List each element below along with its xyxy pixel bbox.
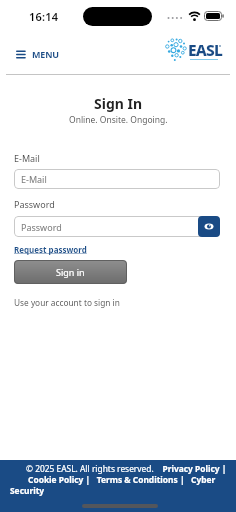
button[interactable]: Sign in	[14, 260, 127, 284]
staticText: E-Mail	[21, 173, 47, 185]
button[interactable]	[198, 216, 220, 237]
button[interactable]: MENU	[14, 46, 61, 62]
staticText: E-Mail	[14, 152, 40, 164]
button[interactable]: E-Mail	[14, 169, 220, 189]
staticText: Sign in	[56, 266, 85, 278]
staticText: Password	[14, 198, 55, 210]
button[interactable]: © 2025 EASL. All rights reserved. Privac…	[26, 463, 227, 474]
button[interactable]: Password	[14, 216, 220, 237]
button[interactable]: Security	[10, 485, 45, 496]
staticText: MENU	[32, 48, 59, 60]
staticText: Online. Onsite. Ongoing.	[69, 114, 168, 126]
staticText: Sign In	[94, 94, 143, 113]
button[interactable]: EASL	[164, 38, 226, 64]
staticText: Password	[21, 221, 62, 233]
staticText: 16:14	[29, 9, 59, 24]
staticText: Use your account to sign in	[14, 297, 120, 308]
button[interactable]: Request password	[14, 244, 87, 255]
staticText: EASL	[188, 39, 222, 60]
button[interactable]: Cookie Policy | Terms & Conditions | Cyb…	[28, 474, 216, 485]
